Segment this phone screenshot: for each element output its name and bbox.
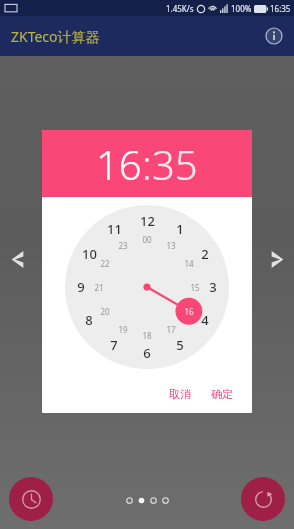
staticText: ZKTeco计算器 — [11, 27, 100, 46]
staticText: 17 — [166, 324, 176, 335]
staticText: 16:35 — [270, 3, 291, 14]
staticText: 1.45K/s — [166, 3, 194, 14]
staticText: 8 — [85, 311, 93, 329]
button[interactable]: 确定 — [204, 383, 240, 405]
staticText: 100% — [231, 3, 252, 14]
button[interactable]: Refresh — [241, 477, 285, 521]
staticText: 1 — [176, 220, 184, 238]
staticText: 21 — [94, 282, 104, 293]
staticText: 11 — [107, 220, 122, 238]
staticText: 19 — [118, 324, 128, 335]
staticText: 2 — [201, 245, 209, 263]
staticText: 取消 — [169, 387, 191, 401]
staticText: 12 — [140, 212, 155, 230]
staticText: 确定 — [211, 387, 233, 401]
staticText: 10 — [82, 245, 97, 263]
staticText: 15 — [190, 282, 200, 293]
staticText: 4 — [201, 311, 209, 329]
staticText: 16 — [184, 306, 194, 317]
button[interactable]: 12 — [65, 205, 229, 369]
button[interactable]: Next — [260, 237, 294, 281]
staticText: 35 — [152, 137, 198, 191]
staticText: 6 — [143, 344, 151, 362]
button[interactable]: 取消 — [162, 383, 198, 405]
button[interactable]: Info — [261, 23, 287, 49]
staticText: 23 — [118, 240, 128, 251]
staticText: 20 — [100, 306, 110, 317]
staticText: 3 — [209, 278, 217, 296]
staticText: 9 — [77, 278, 85, 296]
button[interactable]: History — [9, 477, 53, 521]
staticText: 13 — [166, 240, 176, 251]
staticText: 16 — [96, 137, 142, 191]
staticText: 00 — [142, 234, 152, 245]
staticText: 7 — [110, 336, 118, 354]
staticText: 18 — [142, 330, 152, 341]
staticText: 5 — [176, 336, 184, 354]
staticText: 22 — [100, 258, 110, 269]
staticText: 14 — [184, 258, 194, 269]
button[interactable]: Previous — [0, 237, 34, 281]
staticText: : — [142, 137, 152, 191]
